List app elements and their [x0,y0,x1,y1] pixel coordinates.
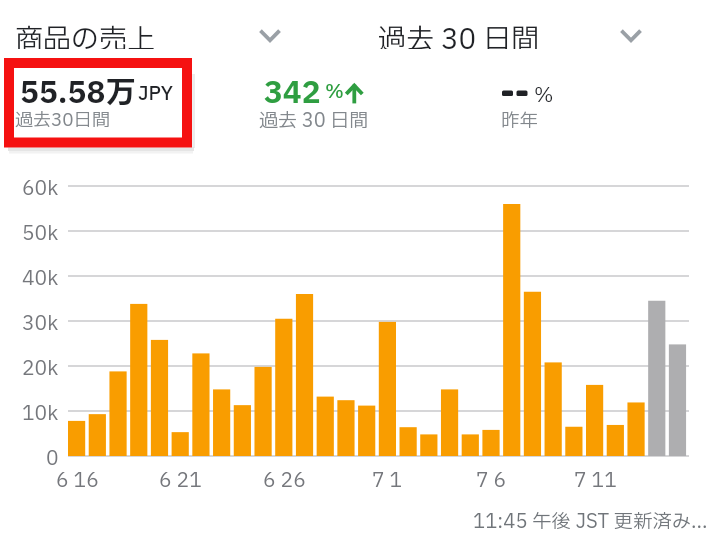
staticText: 10k [22,399,59,423]
staticText: 6 16 [56,466,99,490]
staticText: 11:45 午後 JST 更新済み... [473,508,708,532]
staticText: 50k [22,219,59,243]
staticText: 55.58万 [20,71,136,112]
staticText: 過去 30 日間 [378,19,540,49]
staticText: 7 1 [372,466,403,490]
staticText: 0 [46,444,59,468]
staticText: 6 21 [159,466,202,490]
staticText: JPY [138,80,173,108]
staticText: 20k [22,354,59,378]
staticText: 過去30日間 [15,107,110,133]
button[interactable]: 商品の売上 [15,19,280,49]
staticText: 7 11 [574,466,617,490]
staticText: 過去 30 日間 [259,107,369,133]
button[interactable] [4,58,192,148]
button[interactable]: 過去 30 日間 [378,19,641,49]
staticText: 7 6 [476,466,507,490]
button[interactable] [501,78,571,132]
staticText: 342 [264,71,321,111]
staticText: 60k [22,174,59,198]
button[interactable] [259,70,379,132]
staticText: 6 26 [263,466,306,490]
staticText: % [534,81,554,107]
staticText: 商品の売上 [15,19,156,49]
staticText: 30k [22,309,59,333]
staticText: 昨年 [501,107,539,133]
staticText: % [325,78,344,106]
staticText: 40k [22,264,59,288]
